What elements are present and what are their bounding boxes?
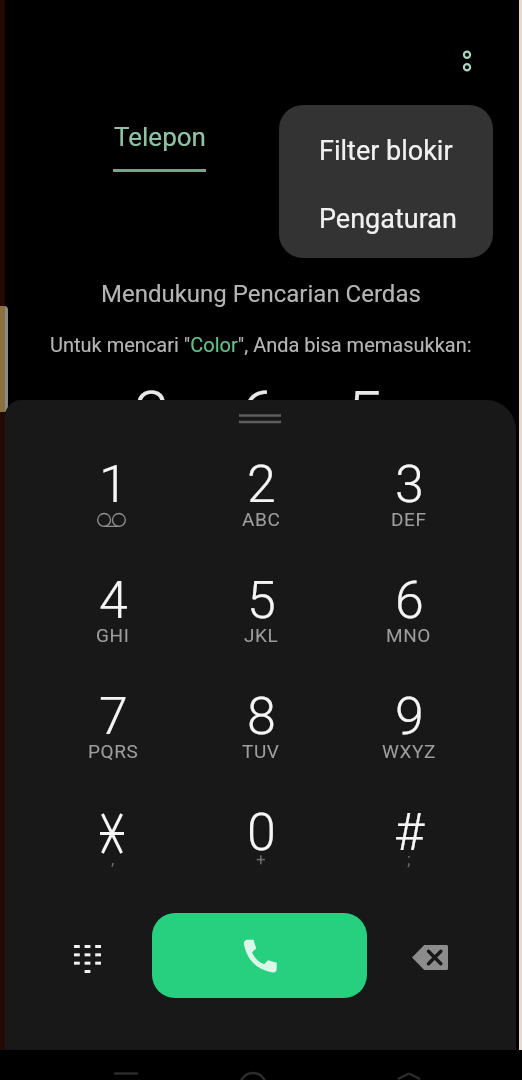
button[interactable]: Back [94,1050,158,1080]
button[interactable]: Key 0 [187,795,335,911]
staticText: ABC [242,508,281,530]
button[interactable]: Key 4 [39,563,187,679]
staticText: GHI [96,624,130,646]
button[interactable]: More options [443,37,491,85]
staticText: 2 [247,454,276,515]
button[interactable]: Key # [335,795,483,911]
staticText: Untuk mencari "Color", Anda bisa memasuk… [50,333,472,356]
button[interactable]: Key 7 [39,679,187,795]
staticText: # [394,802,425,863]
staticText: Mendukung Pencarian Cerdas [101,280,421,308]
button[interactable]: Key 8 [187,679,335,795]
button[interactable]: Key 6 [335,563,483,679]
button[interactable]: Key 9 [335,679,483,795]
staticText: 3 [395,454,424,515]
button[interactable]: Key 3 [335,447,483,563]
staticText: PQRS [88,740,139,762]
staticText: Filter blokir [319,135,453,167]
staticText: 7 [99,686,128,747]
staticText: TUV [242,740,280,762]
button[interactable]: Call [152,913,367,998]
staticText: Telepon [114,122,206,152]
staticText: 4 [99,570,128,631]
staticText: , [111,849,115,869]
staticText: MNO [386,624,432,646]
button[interactable]: Home [221,1050,285,1080]
staticText: 2 · 6 · 5 [134,378,389,453]
button[interactable]: Key 1 [39,447,187,563]
staticText: 0 [247,802,276,863]
staticText: 9 [395,686,424,747]
button[interactable]: Pengaturan [279,185,493,253]
button[interactable]: Key 5 [187,563,335,679]
staticText: + [256,849,266,869]
staticText: WXYZ [382,740,436,762]
staticText: 1 [99,454,128,515]
button[interactable]: Key 2 [187,447,335,563]
staticText: Pengaturan [319,203,457,235]
button[interactable]: Key * [39,795,187,911]
staticText: DEF [391,508,427,530]
staticText: 8 [247,686,276,747]
staticText: ; [407,849,411,869]
staticText: JKL [244,624,279,646]
button[interactable]: Backspace [388,915,472,999]
staticText: 6 [395,570,424,631]
button[interactable]: Filter blokir [279,117,493,185]
button[interactable]: Telepon [113,122,206,172]
button[interactable]: Show keypad [45,917,129,1001]
staticText: 5 [247,570,276,631]
button[interactable]: Recents [377,1050,441,1080]
